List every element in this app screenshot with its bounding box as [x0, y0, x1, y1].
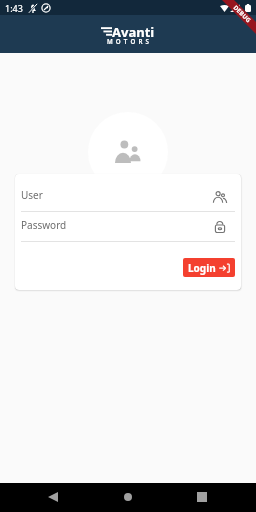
- staticText: Login: [188, 261, 216, 275]
- button[interactable]: User: [21, 184, 235, 205]
- button[interactable]: Recents: [185, 482, 218, 511]
- staticText: 1:43: [5, 2, 23, 14]
- staticText: Password: [21, 218, 67, 232]
- staticText: M O T O R S: [107, 37, 150, 45]
- staticText: Avanti: [112, 23, 155, 41]
- staticText: User: [21, 188, 43, 202]
- button[interactable]: Login: [183, 258, 235, 277]
- staticText: DEBUG: [231, 3, 253, 25]
- button[interactable]: Back: [36, 482, 69, 511]
- button[interactable]: Home: [111, 482, 144, 511]
- button[interactable]: Password: [21, 214, 235, 235]
